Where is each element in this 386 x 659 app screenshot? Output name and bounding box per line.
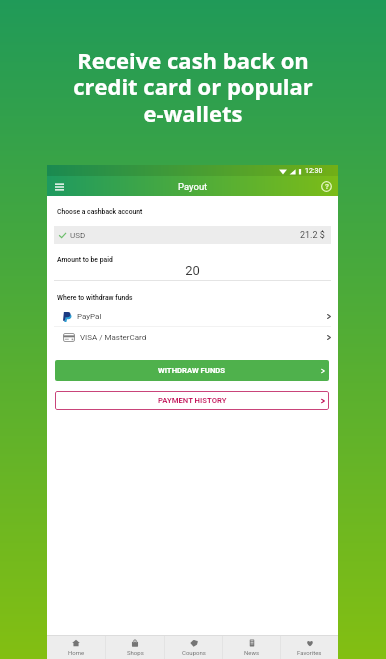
staticText: WITHDRAW FUNDS [158,366,226,375]
button[interactable]: VISA / MasterCard [47,327,338,347]
staticText: PAYMENT HISTORY [158,396,227,405]
staticText: Favorites [297,649,322,656]
button[interactable]: Coupons [165,635,222,659]
staticText: VISA / MasterCard [80,333,147,342]
button[interactable]: News [223,635,280,659]
staticText: Choose a cashback account [57,208,143,216]
button[interactable]: Shops [106,635,164,659]
staticText: 12:30 [305,167,323,175]
staticText: Receive cash back on credit card or popu… [73,45,313,128]
button[interactable]: Favorites [281,635,338,659]
button[interactable]: Home [47,635,105,659]
staticText: Where to withdraw funds [57,294,133,302]
staticText: Shops [127,649,144,656]
staticText: Home [68,649,85,656]
button[interactable]: USD [54,226,331,244]
staticText: Amount to be paid [57,256,113,264]
staticText: USD [70,231,86,240]
staticText: PayPal [77,312,102,321]
staticText: Payout [178,181,208,192]
staticText: ? [325,182,329,191]
button[interactable]: PayPal [47,306,338,326]
staticText: 21.2 $ [300,230,325,241]
staticText: 20 [47,263,338,278]
button[interactable]: WITHDRAW FUNDS [55,360,329,381]
button[interactable]: Menu [52,179,67,194]
staticText: News [244,649,260,656]
staticText: Coupons [182,649,206,656]
button[interactable]: Help [319,179,334,194]
button[interactable]: PAYMENT HISTORY [55,391,329,410]
